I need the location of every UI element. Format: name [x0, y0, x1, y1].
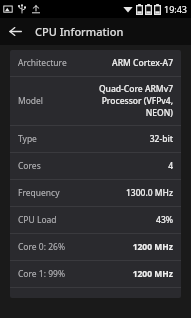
button[interactable]: Frequency — [10, 180, 181, 206]
staticText: Processor (VFPv4, — [101, 95, 173, 107]
staticText: Architecture — [18, 57, 67, 69]
staticText: Quad-Core ARMv7 — [98, 83, 173, 95]
button[interactable]: Model — [10, 77, 181, 125]
staticText: CPU Information — [35, 24, 124, 39]
button[interactable]: Architecture — [10, 50, 181, 76]
staticText: ARM Cortex-A7 — [112, 57, 173, 69]
button[interactable]: Core 1: 99% — [10, 261, 181, 287]
staticText: 1200 MHz — [132, 241, 173, 253]
button[interactable]: Type — [10, 126, 181, 152]
button[interactable]: Core 0: 26% — [10, 234, 181, 260]
staticText: CPU Load — [18, 214, 57, 226]
staticText: 19:43 — [164, 3, 188, 15]
button[interactable]: CPU Load — [10, 207, 181, 233]
staticText: Model — [18, 95, 44, 107]
staticText: 4 — [168, 160, 173, 172]
staticText: 43% — [156, 214, 173, 226]
staticText: 1200 MHz — [132, 268, 173, 280]
staticText: 1300.0 MHz — [125, 187, 173, 199]
button[interactable]: Back — [0, 18, 30, 45]
staticText: Frequency — [18, 187, 60, 199]
staticText: Cores — [18, 160, 41, 172]
staticText: Type — [18, 133, 37, 145]
staticText: 32-bit — [149, 133, 173, 145]
button[interactable]: Cores — [10, 153, 181, 179]
staticText: Core 1: 99% — [18, 268, 65, 280]
staticText: Core 0: 26% — [18, 241, 65, 253]
staticText: NEON) — [145, 107, 173, 119]
